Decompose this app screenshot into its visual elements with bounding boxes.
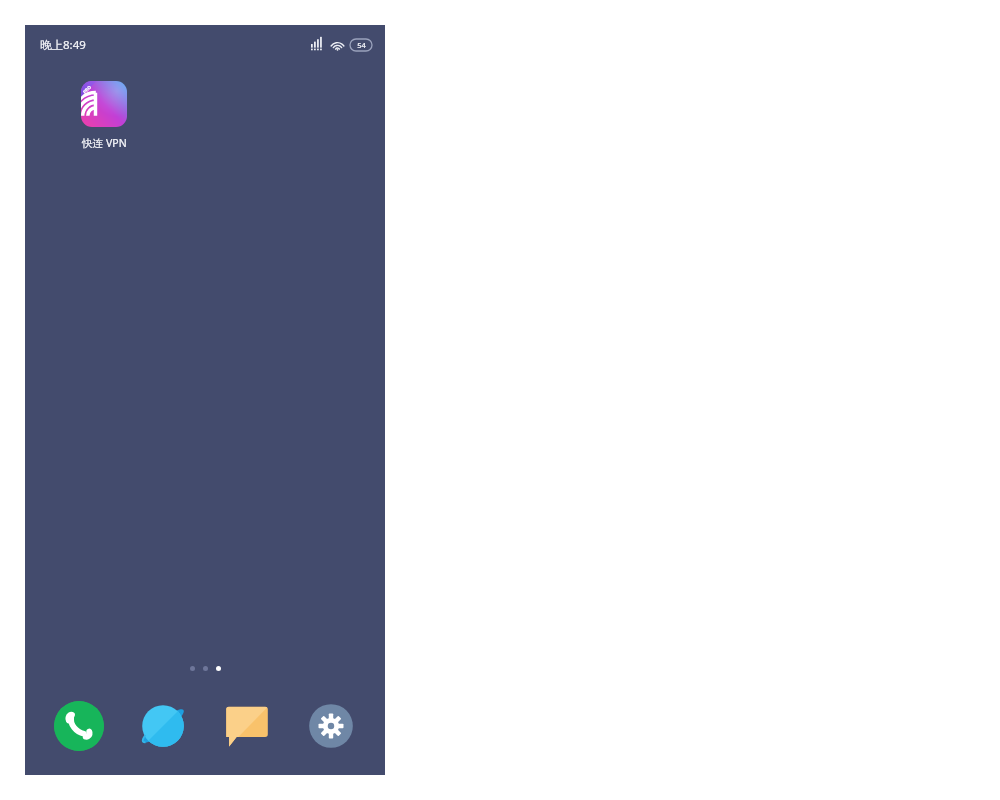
button[interactable]: Messages	[221, 700, 273, 752]
button[interactable]: Settings	[305, 700, 357, 752]
button[interactable]: PRO	[69, 81, 139, 150]
staticText: 快连 VPN	[82, 136, 127, 150]
staticText: PRO	[81, 83, 93, 95]
staticText: 晚上8:49	[40, 37, 86, 53]
staticText: 54	[357, 40, 366, 50]
button[interactable]: Phone	[53, 700, 105, 752]
button[interactable]: Browser	[137, 700, 189, 752]
